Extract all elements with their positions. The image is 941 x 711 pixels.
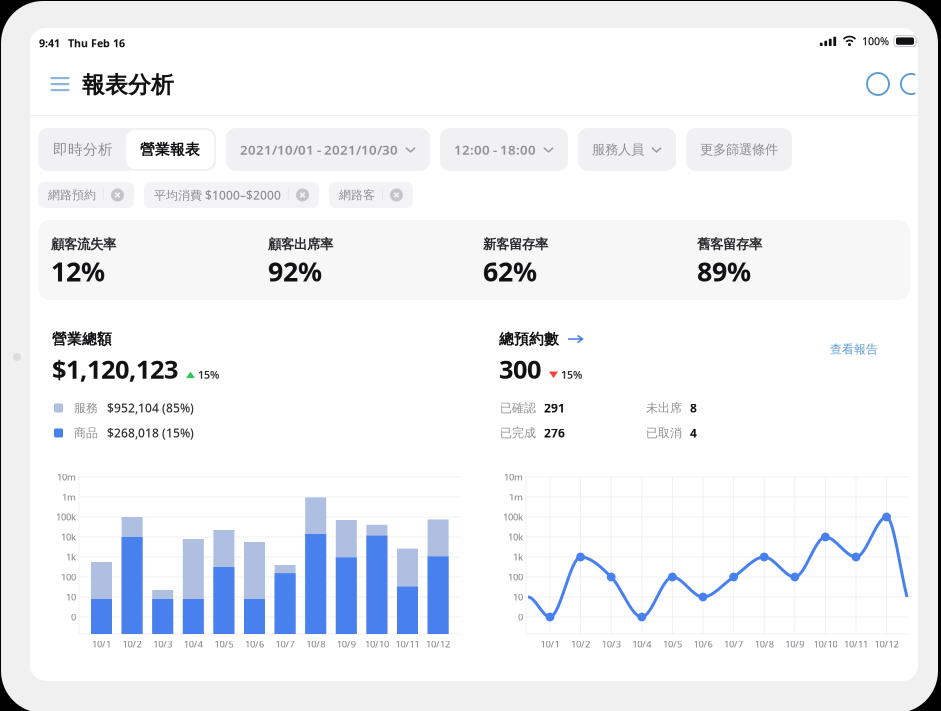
staticText: 10/7 xyxy=(276,638,295,650)
staticText: 報表分析 xyxy=(82,71,174,99)
staticText: 15% xyxy=(198,367,219,382)
staticText: 已確認 xyxy=(500,401,536,415)
button[interactable]: 查看報告 xyxy=(822,334,886,365)
button[interactable]: 網路預約 xyxy=(38,182,134,208)
staticText: 276 xyxy=(544,425,565,441)
staticText: 1m xyxy=(62,491,76,503)
staticText: 10/9 xyxy=(337,638,356,650)
staticText: 顧客流失率 xyxy=(51,236,116,252)
staticText: 10/3 xyxy=(153,638,172,650)
button[interactable]: 更多篩選條件 xyxy=(686,128,792,171)
button[interactable]: 平均消費 $1000–$2000 xyxy=(144,182,319,208)
staticText: 10/4 xyxy=(632,638,651,650)
staticText: 10 xyxy=(513,591,523,603)
staticText: 10/5 xyxy=(214,638,233,650)
staticText: 顧客出席率 xyxy=(268,236,333,252)
staticText: 10/8 xyxy=(306,638,325,650)
staticText: 已完成 xyxy=(500,426,536,440)
button[interactable]: 2021/10/01 - 2021/10/30 xyxy=(226,128,430,171)
staticText: 10 xyxy=(66,591,76,603)
staticText: 92% xyxy=(268,253,322,289)
staticText: 8 xyxy=(690,400,697,416)
staticText: 1k xyxy=(513,551,523,563)
staticText: 10/6 xyxy=(245,638,264,650)
staticText: 新客留存率 xyxy=(483,236,548,252)
staticText: 1m xyxy=(509,491,523,503)
staticText: 9:41 xyxy=(39,36,60,50)
staticText: 服務人員 xyxy=(592,141,644,158)
staticText: 10/1 xyxy=(540,638,559,650)
staticText: 10/6 xyxy=(693,638,712,650)
staticText: $952,104 (85%) xyxy=(107,400,194,416)
staticText: 10/2 xyxy=(123,638,142,650)
button[interactable]: 即時分析 xyxy=(40,130,126,169)
staticText: 商品 xyxy=(74,426,98,440)
staticText: 300 xyxy=(499,352,541,386)
staticText: 未出席 xyxy=(646,401,682,415)
staticText: 網路客 xyxy=(339,188,375,202)
staticText: 舊客留存率 xyxy=(697,236,762,252)
button[interactable]: 營業報表 xyxy=(126,130,214,169)
staticText: 10/5 xyxy=(663,638,682,650)
staticText: 10/2 xyxy=(571,638,590,650)
staticText: Thu Feb 16 xyxy=(68,36,125,50)
staticText: 12% xyxy=(51,253,105,289)
staticText: 10/3 xyxy=(602,638,621,650)
staticText: 營業報表 xyxy=(140,140,200,158)
staticText: 12:00 - 18:00 xyxy=(454,141,536,158)
staticText: 10/10 xyxy=(365,638,389,650)
staticText: 平均消費 $1000–$2000 xyxy=(154,187,281,203)
staticText: 4 xyxy=(690,425,697,441)
staticText: 15% xyxy=(561,367,582,382)
staticText: 100k xyxy=(56,511,76,523)
staticText: 10/11 xyxy=(395,638,419,650)
staticText: $268,018 (15%) xyxy=(107,425,194,441)
staticText: 0 xyxy=(518,611,523,623)
staticText: 10/9 xyxy=(785,638,804,650)
staticText: 10/4 xyxy=(184,638,203,650)
staticText: 100 xyxy=(508,571,523,583)
staticText: 10m xyxy=(57,471,76,483)
staticText: 10m xyxy=(504,471,523,483)
staticText: 10/1 xyxy=(92,638,111,650)
staticText: 10/10 xyxy=(813,638,837,650)
staticText: 更多篩選條件 xyxy=(700,141,778,158)
staticText: $1,120,123 xyxy=(52,352,178,386)
staticText: 0 xyxy=(71,611,76,623)
staticText: 89% xyxy=(697,253,751,289)
staticText: 服務 xyxy=(74,401,98,415)
staticText: 100 xyxy=(61,571,76,583)
staticText: 10k xyxy=(508,531,523,543)
staticText: 10/12 xyxy=(875,638,899,650)
staticText: 62% xyxy=(483,253,537,289)
staticText: 291 xyxy=(544,400,565,416)
staticText: 2021/10/01 - 2021/10/30 xyxy=(240,141,398,158)
staticText: 查看報告 xyxy=(830,342,878,357)
staticText: 100k xyxy=(503,511,523,523)
staticText: 總預約數 xyxy=(499,330,559,348)
staticText: 10/12 xyxy=(426,638,450,650)
staticText: 10/8 xyxy=(755,638,774,650)
staticText: 10k xyxy=(61,531,76,543)
button[interactable]: 12:00 - 18:00 xyxy=(440,128,568,171)
staticText: 即時分析 xyxy=(53,140,113,158)
button[interactable]: Notifications xyxy=(861,67,895,101)
button[interactable]: 網路客 xyxy=(329,182,413,208)
staticText: 10/7 xyxy=(724,638,743,650)
button[interactable]: Menu xyxy=(44,68,76,100)
staticText: 營業總額 xyxy=(52,330,112,348)
staticText: 1k xyxy=(66,551,76,563)
staticText: 網路預約 xyxy=(48,188,96,202)
button[interactable]: Refresh xyxy=(894,67,928,101)
button[interactable]: 服務人員 xyxy=(578,128,676,171)
staticText: 100% xyxy=(862,34,889,48)
staticText: 已取消 xyxy=(646,426,682,440)
staticText: 10/11 xyxy=(844,638,868,650)
